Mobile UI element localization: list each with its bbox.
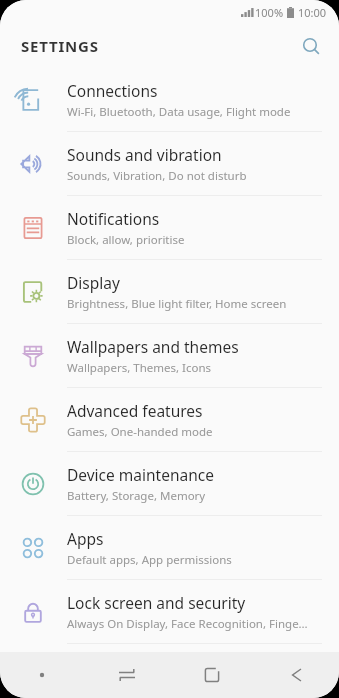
staticText: Wi-Fi, Bluetooth, Data usage, Flight mod… bbox=[67, 104, 291, 120]
staticText: Block, allow, prioritise bbox=[67, 232, 185, 248]
button[interactable]: Search bbox=[294, 29, 328, 63]
button[interactable]: Assistant bbox=[0, 652, 84, 698]
staticText: Always On Display, Face Recognition, Fin… bbox=[67, 616, 308, 632]
staticText: 10:00 bbox=[298, 5, 327, 20]
staticText: Advanced features bbox=[67, 400, 203, 421]
button[interactable]: Home bbox=[169, 652, 254, 698]
button[interactable]: Notifications bbox=[0, 196, 339, 259]
staticText: Sounds and vibration bbox=[67, 144, 222, 165]
staticText: SETTINGS bbox=[21, 36, 99, 56]
staticText: Sounds, Vibration, Do not disturb bbox=[67, 168, 247, 184]
staticText: Notifications bbox=[67, 208, 160, 229]
button[interactable]: Advanced features bbox=[0, 388, 339, 451]
button[interactable]: Recents bbox=[84, 652, 169, 698]
button[interactable]: Apps bbox=[0, 516, 339, 579]
button[interactable]: Back bbox=[254, 652, 339, 698]
button[interactable]: Device maintenance bbox=[0, 452, 339, 515]
button[interactable]: Sounds and vibration bbox=[0, 132, 339, 195]
staticText: Brightness, Blue light filter, Home scre… bbox=[67, 296, 287, 312]
staticText: Battery, Storage, Memory bbox=[67, 488, 206, 504]
staticText: Wallpapers and themes bbox=[67, 336, 239, 357]
staticText: Default apps, App permissions bbox=[67, 552, 232, 568]
staticText: 100% bbox=[255, 5, 284, 20]
button[interactable]: Wallpapers and themes bbox=[0, 324, 339, 387]
button[interactable]: Lock screen and security bbox=[0, 580, 339, 643]
staticText: Apps bbox=[67, 528, 104, 549]
button[interactable]: Connections bbox=[0, 68, 339, 131]
staticText: Connections bbox=[67, 80, 158, 101]
staticText: Display bbox=[67, 272, 120, 293]
staticText: Wallpapers, Themes, Icons bbox=[67, 360, 212, 376]
staticText: Games, One-handed mode bbox=[67, 424, 213, 440]
staticText: Device maintenance bbox=[67, 464, 214, 485]
button[interactable]: Display bbox=[0, 260, 339, 323]
staticText: Lock screen and security bbox=[67, 592, 246, 613]
